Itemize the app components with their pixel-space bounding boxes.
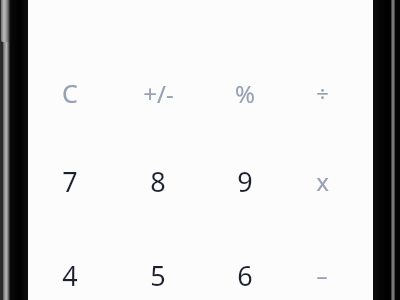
staticText: C xyxy=(62,76,78,110)
button[interactable]: 9 xyxy=(204,142,286,220)
staticText: ÷ xyxy=(316,78,329,108)
button[interactable]: ÷ xyxy=(281,54,363,132)
button[interactable]: +/- xyxy=(117,54,199,132)
staticText: +/- xyxy=(143,77,174,110)
button[interactable]: x xyxy=(281,142,363,220)
staticText: 8 xyxy=(150,163,166,200)
button[interactable]: C xyxy=(29,54,111,132)
staticText: 4 xyxy=(62,257,78,294)
staticText: 7 xyxy=(62,163,78,200)
button[interactable]: % xyxy=(204,54,286,132)
button[interactable]: – xyxy=(281,236,363,300)
button[interactable]: 7 xyxy=(29,142,111,220)
button[interactable]: 8 xyxy=(117,142,199,220)
staticText: 6 xyxy=(237,257,253,294)
other: Side button xyxy=(1,0,10,42)
staticText: 9 xyxy=(237,163,253,200)
staticText: – xyxy=(316,260,328,290)
button[interactable]: 4 xyxy=(29,236,111,300)
staticText: 5 xyxy=(150,257,166,294)
staticText: x xyxy=(316,165,329,198)
button[interactable]: 5 xyxy=(117,236,199,300)
button[interactable]: 6 xyxy=(204,236,286,300)
staticText: % xyxy=(235,77,255,110)
